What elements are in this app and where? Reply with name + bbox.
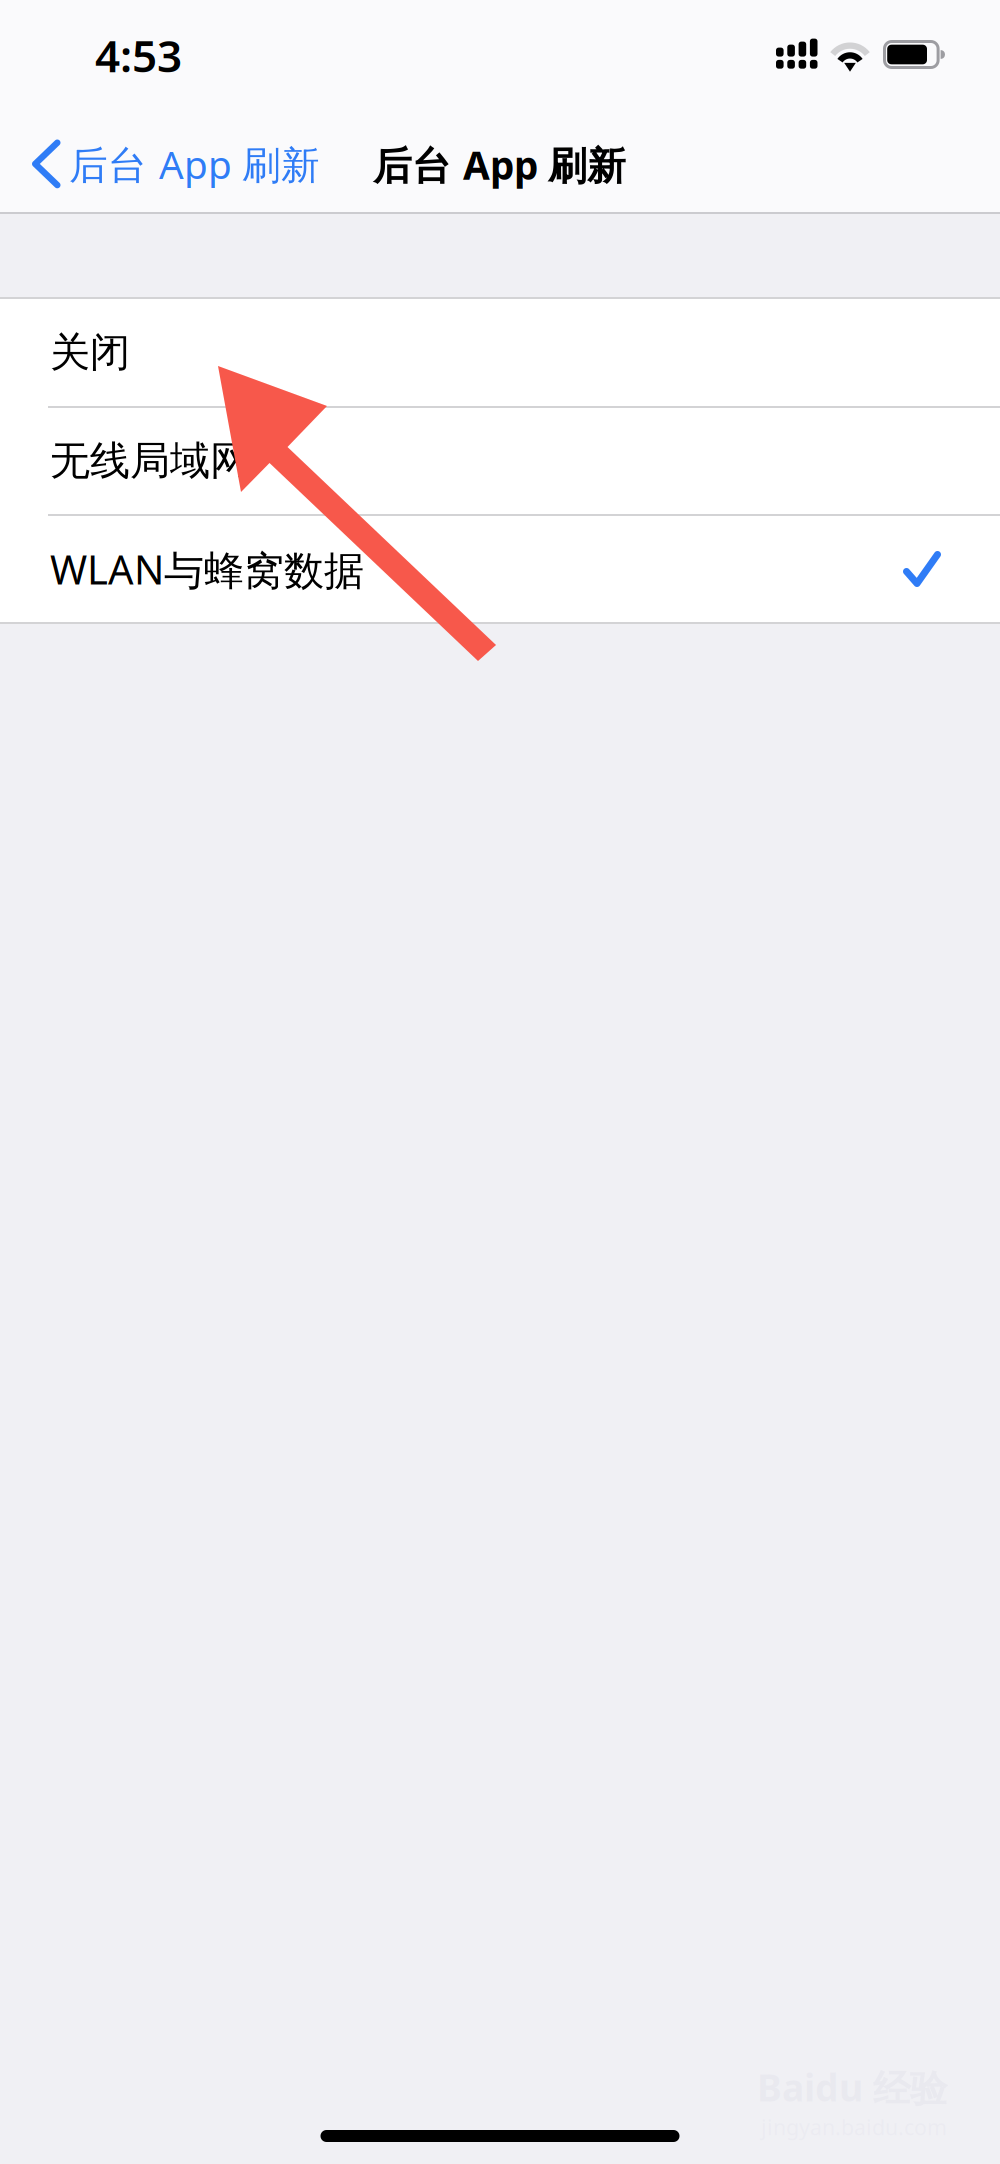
button[interactable]: 关闭	[0, 299, 1000, 406]
staticText: 后台 App 刷新	[69, 138, 320, 190]
staticText: 无线局域网	[50, 436, 250, 485]
button[interactable]: 无线局域网	[0, 408, 1000, 514]
staticText: WLAN与蜂窝数据	[50, 542, 364, 596]
staticText: 4:53	[95, 26, 182, 84]
button[interactable]: WLAN与蜂窝数据	[0, 516, 1000, 622]
button[interactable]: 后台 App 刷新	[0, 119, 336, 209]
staticText: 关闭	[50, 328, 130, 377]
staticText: 后台 App 刷新	[373, 139, 626, 190]
